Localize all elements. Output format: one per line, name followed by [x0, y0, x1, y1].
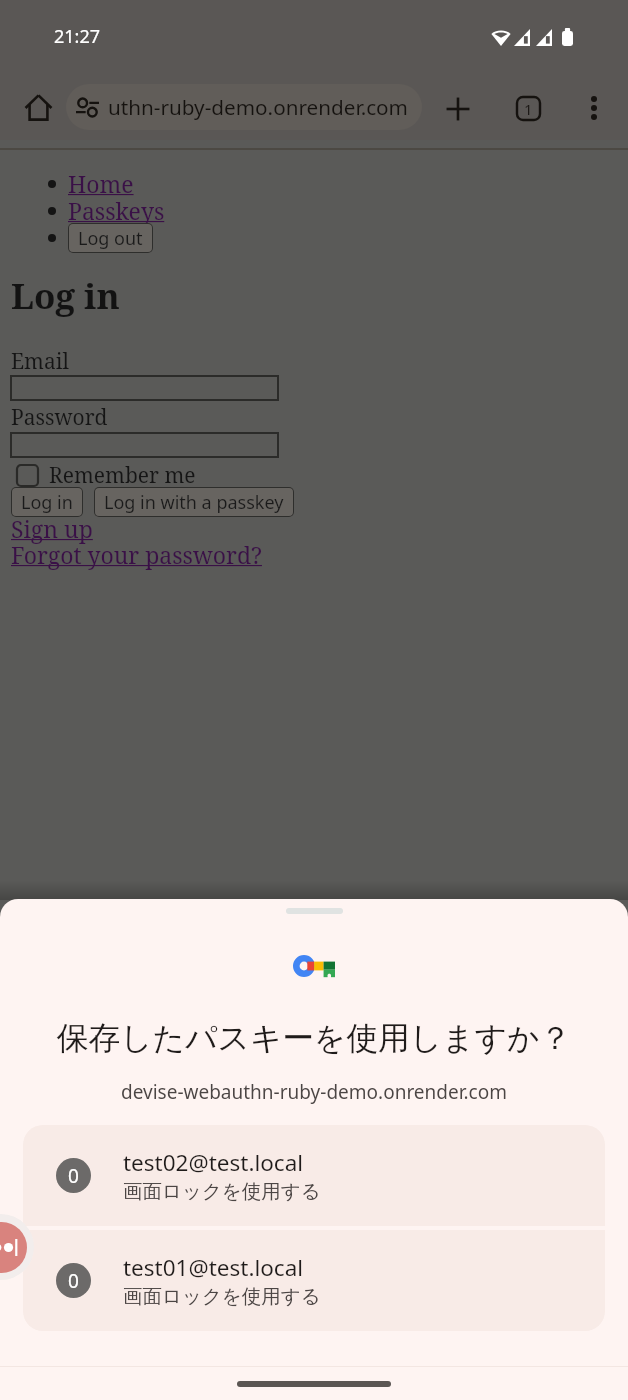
- staticText: 1: [524, 99, 533, 119]
- staticText: 0: [68, 1268, 79, 1294]
- button[interactable]: Floating shortcut: [0, 1214, 34, 1280]
- staticText: Remember me: [49, 461, 196, 490]
- button[interactable]: 0: [23, 1125, 605, 1226]
- staticText: Log in with a passkey: [104, 490, 284, 515]
- button[interactable]: Log out: [68, 223, 153, 253]
- staticText: devise-webauthn-ruby-demo.onrender.com: [0, 1079, 628, 1105]
- staticText: 画面ロックを使用する: [123, 1284, 321, 1309]
- button[interactable]: Tab switcher: [506, 86, 550, 130]
- button[interactable]: 0: [23, 1230, 605, 1331]
- button[interactable]: Log in with a passkey: [94, 487, 294, 517]
- button[interactable]: Passkeys: [68, 195, 165, 226]
- button[interactable]: Sign up: [11, 513, 93, 544]
- button[interactable]: uthn-ruby-demo.onrender.com: [66, 84, 422, 130]
- button[interactable]: Home: [68, 168, 134, 199]
- staticText: 21:27: [54, 24, 101, 49]
- staticText: Password: [11, 403, 108, 432]
- button[interactable]: New tab: [436, 87, 480, 131]
- staticText: Log out: [78, 226, 143, 251]
- button[interactable]: [17, 465, 38, 486]
- staticText: 保存したパスキーを使用しますか？: [0, 1018, 628, 1058]
- staticText: test01@test.local: [123, 1252, 304, 1283]
- staticText: uthn-ruby-demo.onrender.com: [108, 93, 408, 121]
- staticText: Email: [11, 347, 69, 376]
- button[interactable]: Log in: [11, 487, 83, 517]
- staticText: Log in: [21, 490, 73, 515]
- button[interactable]: More options: [572, 86, 616, 130]
- staticText: Log in: [11, 272, 120, 320]
- button[interactable]: Home: [18, 87, 58, 127]
- staticText: test02@test.local: [123, 1147, 304, 1178]
- staticText: 画面ロックを使用する: [123, 1179, 321, 1204]
- button[interactable]: Forgot your password?: [11, 539, 262, 570]
- staticText: 0: [68, 1163, 79, 1189]
